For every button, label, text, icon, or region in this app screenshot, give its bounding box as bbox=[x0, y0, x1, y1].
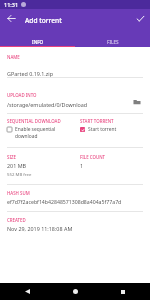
staticText: /storage/emulated/0/Download bbox=[7, 101, 88, 108]
staticText: 1 bbox=[80, 162, 84, 169]
staticText: 552 MB free bbox=[7, 171, 32, 177]
staticText: Start torrent bbox=[88, 126, 117, 133]
staticText: FILE COUNT bbox=[80, 154, 106, 160]
staticText: ef7d7f2acebf14b42848571308d8a404a5f77a7d bbox=[7, 198, 122, 205]
staticText: HASH SUM bbox=[7, 190, 30, 196]
button[interactable]: Home bbox=[68, 284, 83, 299]
staticText: 11:31 bbox=[4, 1, 19, 8]
staticText: Enable sequential download bbox=[15, 126, 56, 140]
button[interactable]: Start torrent bbox=[80, 126, 117, 133]
staticText: SEQUENTIAL DOWNLOAD bbox=[7, 118, 61, 124]
button[interactable]: Back bbox=[20, 284, 35, 299]
staticText: UPLOAD INTO bbox=[7, 92, 37, 98]
staticText: START TORRENT bbox=[80, 118, 114, 124]
button[interactable]: Recents bbox=[115, 284, 130, 299]
staticText: GParted 0.19.1.zip bbox=[7, 70, 54, 77]
staticText: INFO bbox=[32, 39, 44, 45]
staticText: Add torrent bbox=[25, 16, 62, 25]
staticText: FILES bbox=[107, 39, 119, 45]
button[interactable]: Back bbox=[4, 11, 18, 25]
staticText: SIZE bbox=[7, 154, 16, 160]
staticText: CREATED bbox=[7, 217, 26, 223]
staticText: Nov 29, 2019 11:18:08 AM bbox=[7, 225, 73, 232]
button[interactable]: FILES bbox=[75, 37, 150, 47]
button[interactable]: Enable sequential download bbox=[7, 126, 77, 140]
button[interactable]: Done bbox=[133, 11, 147, 25]
staticText: NAME bbox=[7, 54, 20, 60]
staticText: 201 MB bbox=[7, 162, 27, 169]
button[interactable]: INFO bbox=[0, 37, 75, 47]
button[interactable]: Choose folder bbox=[131, 96, 143, 108]
